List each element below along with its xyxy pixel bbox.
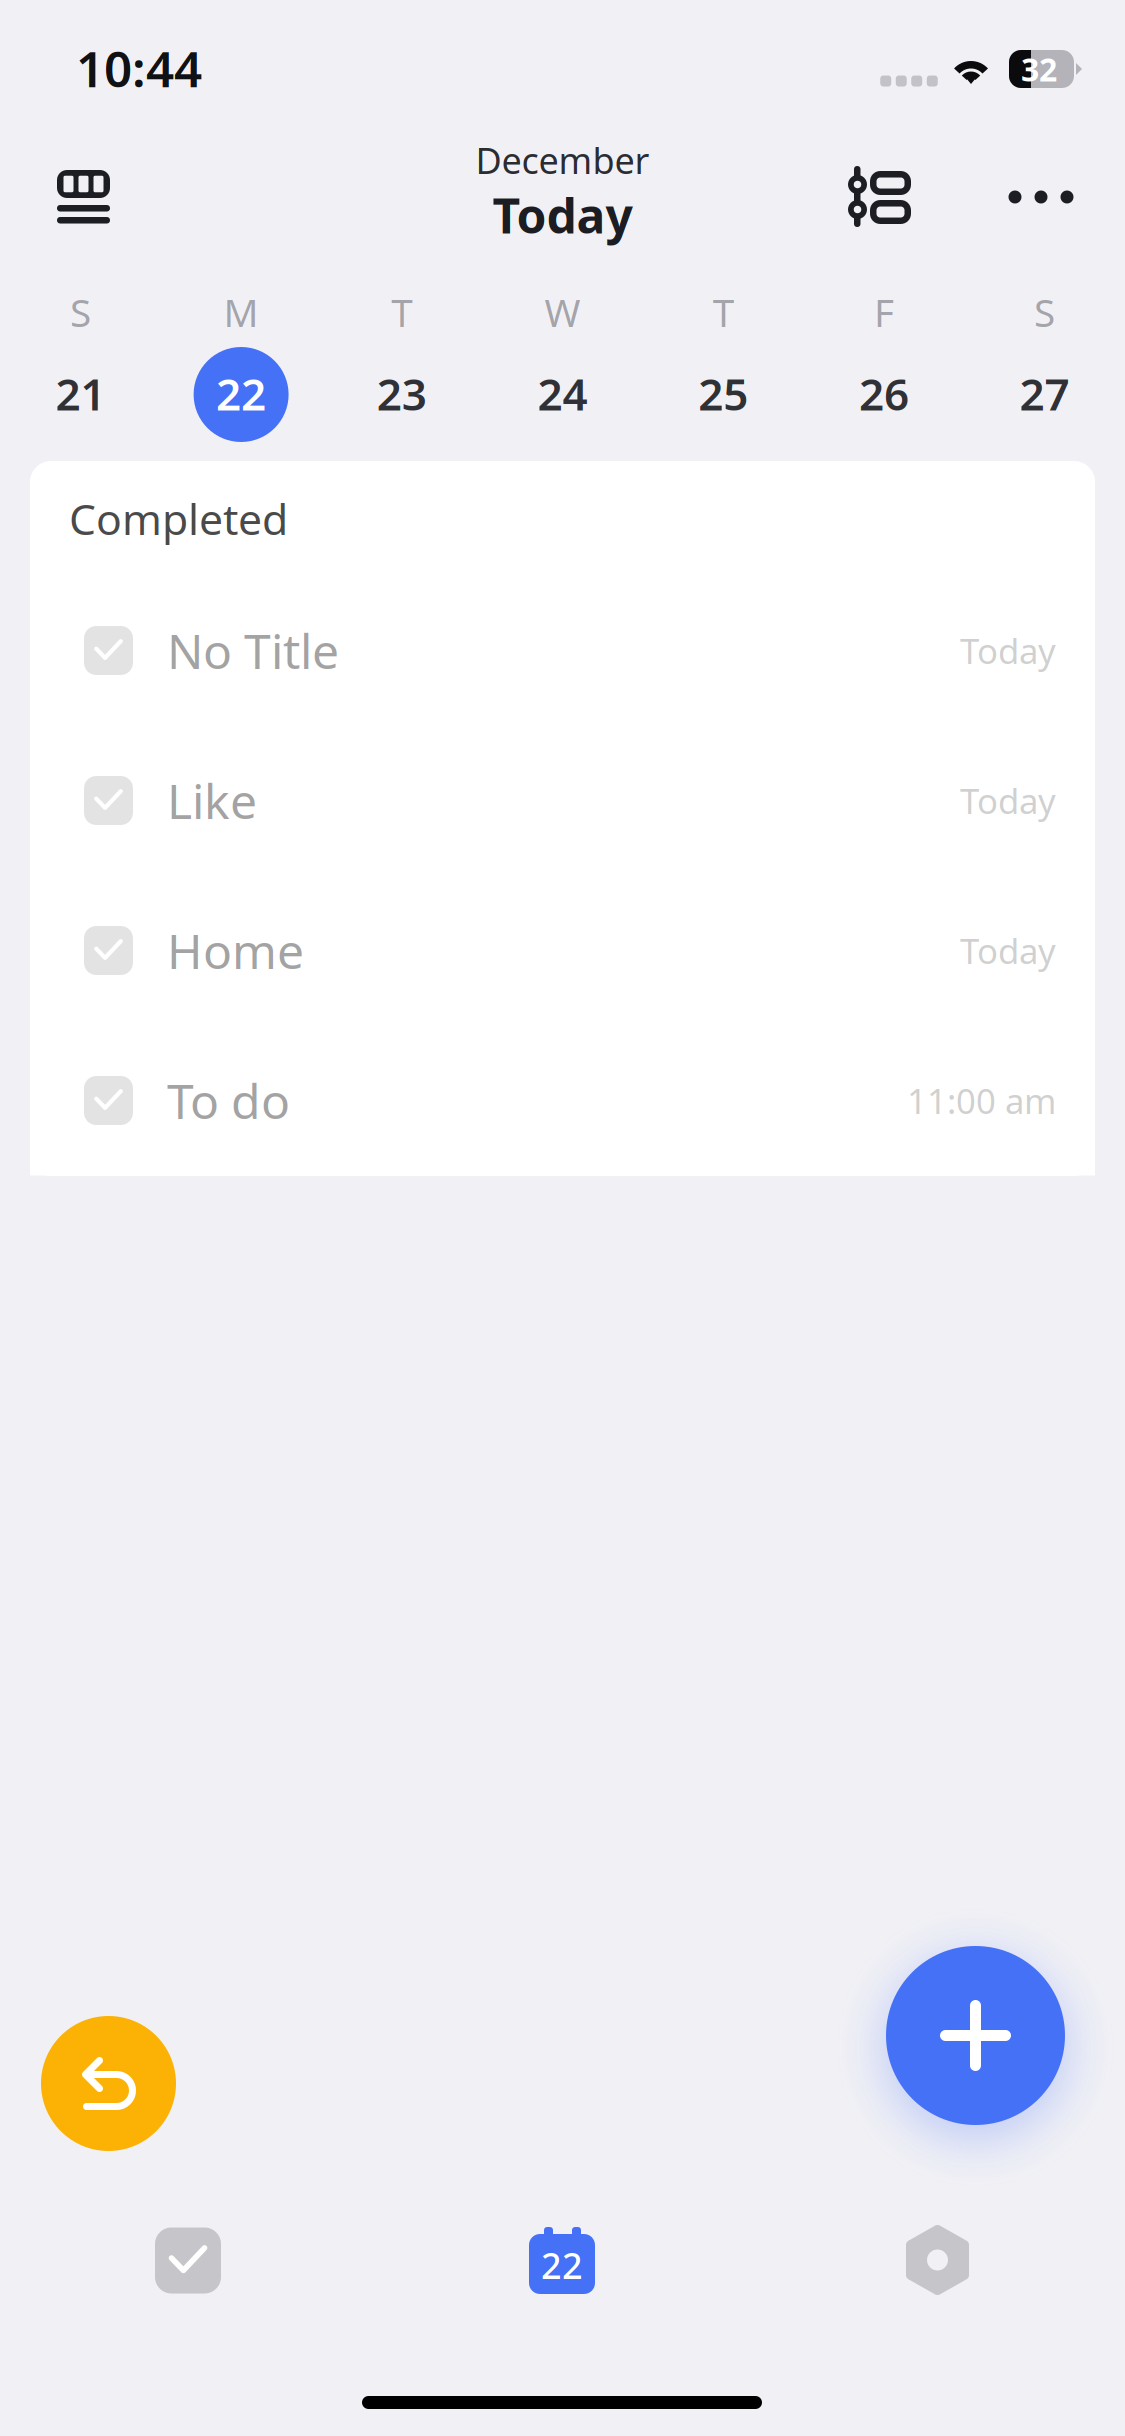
button[interactable]: F (803, 292, 964, 447)
staticText: Today (960, 777, 1056, 823)
button[interactable]: Like (30, 725, 1095, 875)
button[interactable]: T (321, 292, 482, 447)
staticText: Like (167, 769, 257, 832)
button[interactable]: No Title (30, 575, 1095, 725)
staticText: 23 (377, 364, 427, 423)
staticText: S (1034, 286, 1055, 338)
button[interactable]: S (0, 292, 161, 447)
staticText: Today (492, 183, 632, 247)
button[interactable]: M (161, 292, 321, 447)
button[interactable]: Home (30, 875, 1095, 1025)
button[interactable]: More options (1008, 186, 1074, 208)
button[interactable]: Board view (57, 170, 110, 223)
staticText: Home (167, 919, 304, 982)
staticText: 26 (859, 364, 909, 423)
button[interactable]: Add task (886, 1946, 1065, 2125)
staticText: 11:00 am (907, 1077, 1056, 1123)
staticText: 22 (216, 364, 266, 423)
staticText: 25 (698, 364, 748, 423)
button[interactable]: W (482, 292, 643, 447)
button[interactable]: To do (30, 1025, 1095, 1175)
staticText: 21 (55, 364, 105, 423)
staticText: To do (167, 1069, 290, 1132)
button[interactable]: Calendar (529, 2227, 595, 2294)
staticText: W (544, 286, 580, 338)
staticText: 22 (541, 2241, 583, 2289)
staticText: 24 (537, 364, 587, 423)
staticText: 10:44 (76, 35, 202, 101)
button[interactable]: Timeline view (848, 166, 911, 227)
staticText: Completed (69, 490, 288, 547)
staticText: F (874, 286, 894, 338)
button[interactable]: Settings (906, 2225, 969, 2295)
staticText: T (391, 286, 412, 338)
staticText: Today (960, 627, 1056, 673)
staticText: 27 (1020, 364, 1070, 423)
staticText: No Title (167, 619, 339, 682)
button[interactable]: Undo (41, 2016, 176, 2151)
staticText: Today (960, 927, 1056, 973)
staticText: 32 (1021, 48, 1057, 90)
staticText: M (224, 286, 259, 338)
staticText: December (475, 136, 649, 184)
button[interactable]: Tasks (155, 2227, 221, 2293)
button[interactable]: T (643, 292, 803, 447)
staticText: T (713, 286, 734, 338)
button[interactable]: S (964, 292, 1125, 447)
staticText: S (70, 286, 91, 338)
